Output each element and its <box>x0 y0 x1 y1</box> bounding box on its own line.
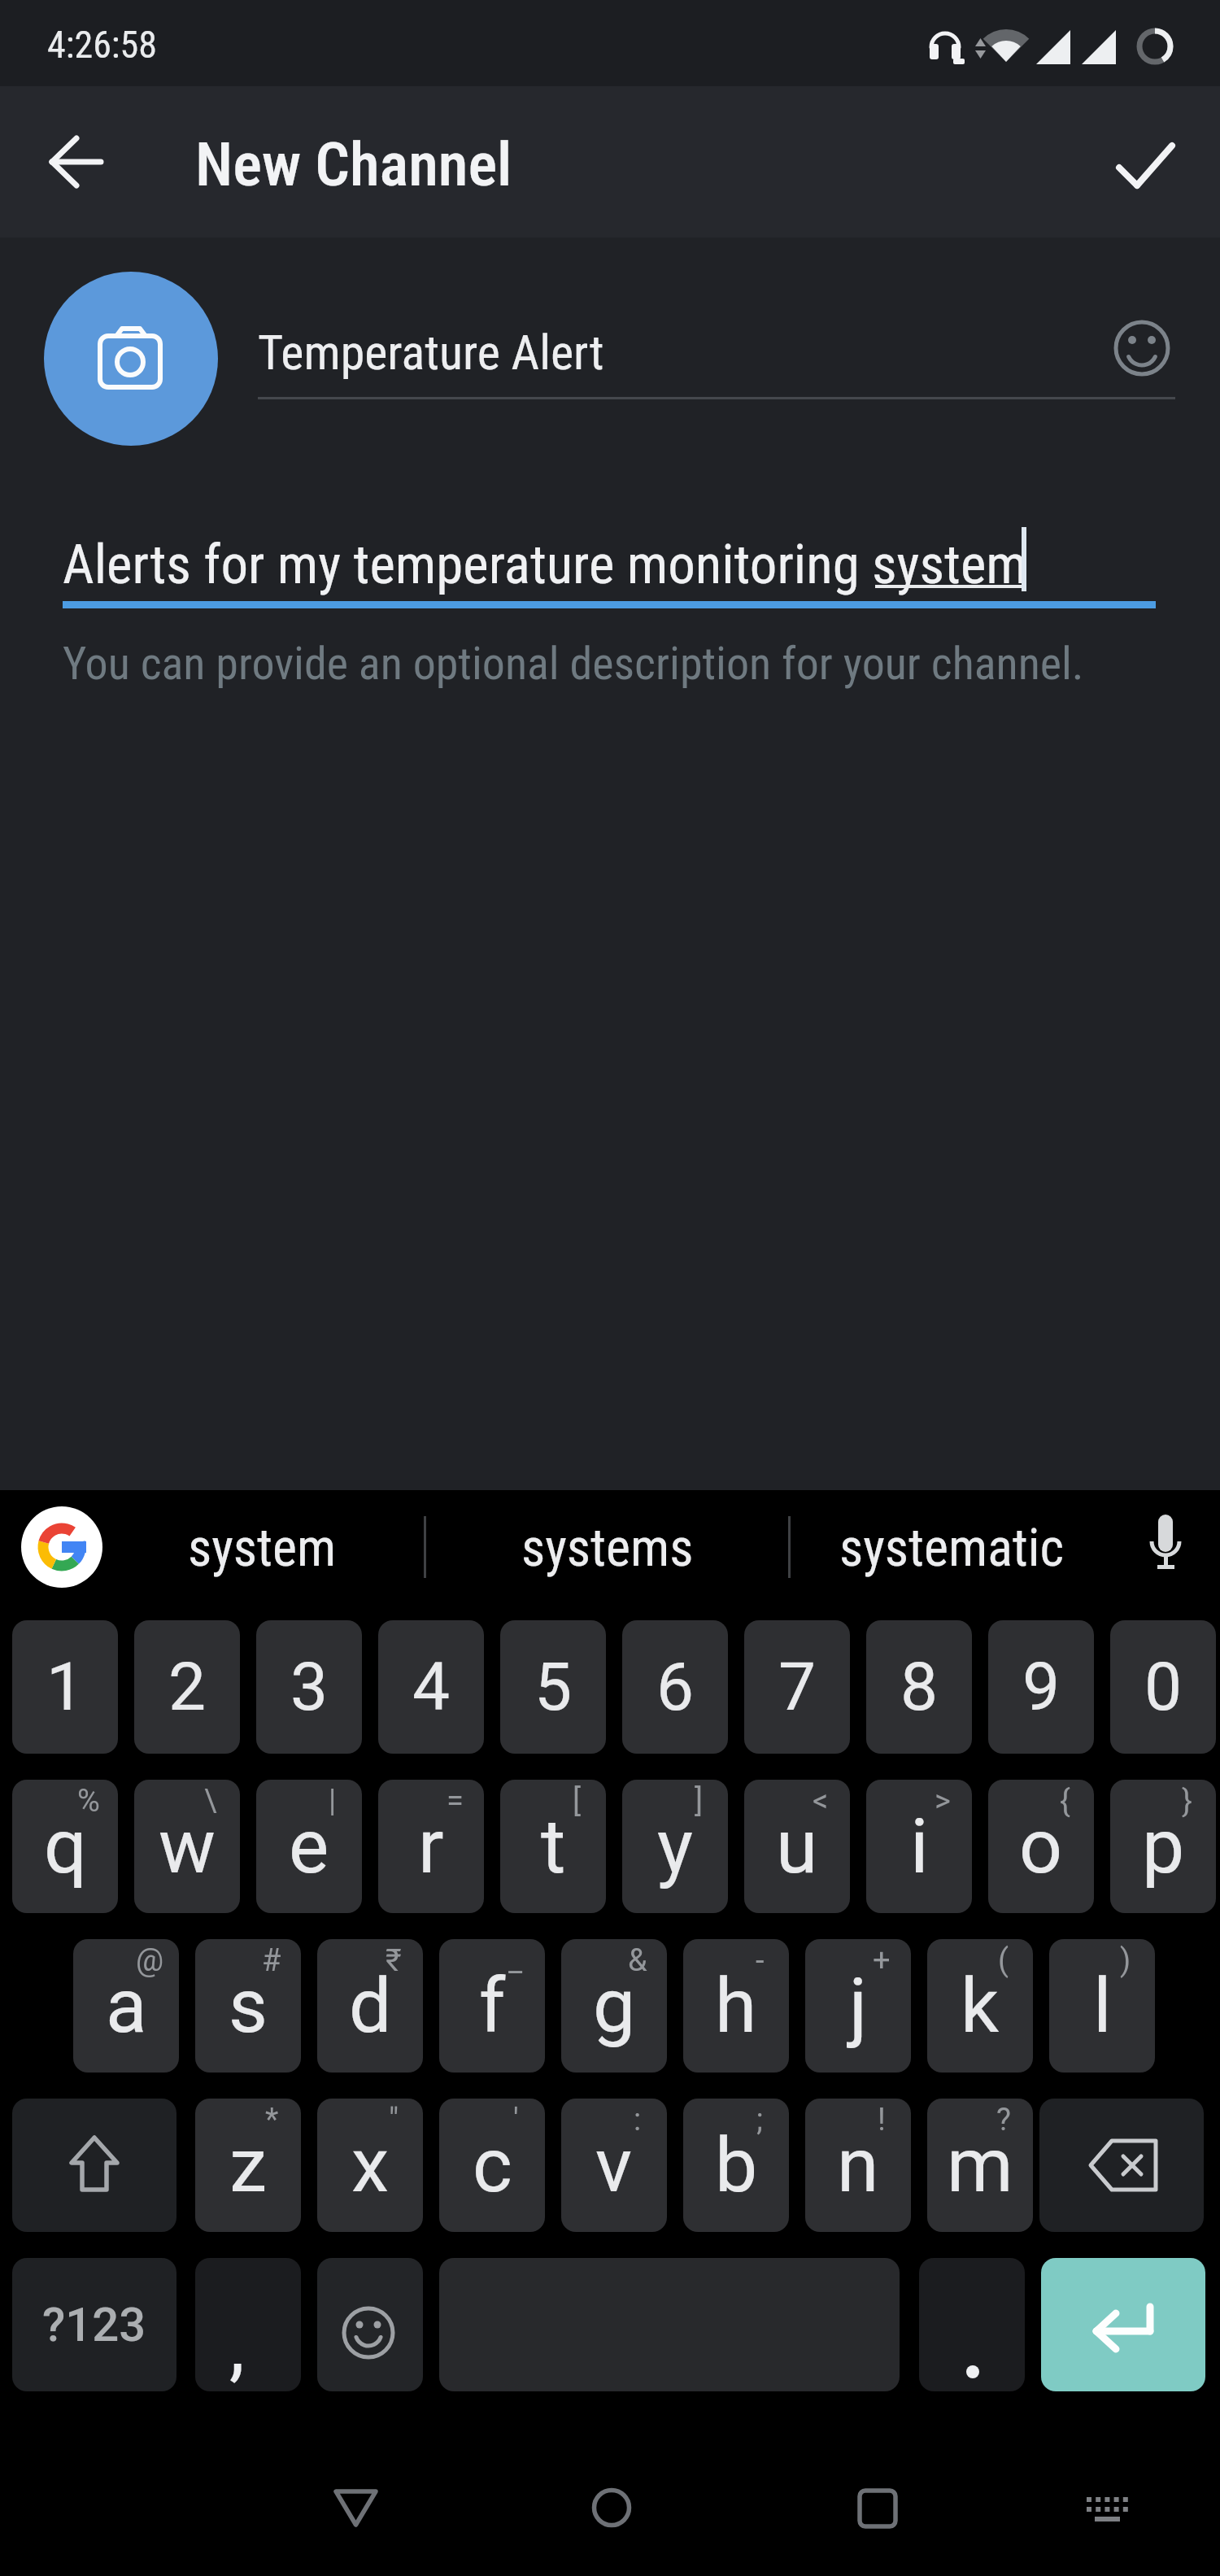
staticText: = <box>447 1783 464 1820</box>
staticText: m <box>947 2121 1013 2210</box>
staticText: | <box>329 1783 337 1820</box>
staticText: @ <box>136 1942 164 1979</box>
staticText: + <box>873 1942 891 1979</box>
staticText: 6 <box>656 1648 695 1726</box>
staticText: z <box>229 2121 268 2210</box>
staticText: _ <box>508 1942 523 1979</box>
staticText: , <box>229 2300 245 2391</box>
staticText: 2 <box>168 1648 207 1726</box>
staticText: Temperature Alert <box>258 324 604 381</box>
staticText: { <box>1060 1783 1070 1820</box>
staticText: [ <box>573 1783 582 1820</box>
staticText: You can provide an optional description … <box>63 637 1084 691</box>
staticText: ?123 <box>42 2297 146 2352</box>
staticText: j <box>849 1962 868 2051</box>
staticText: v <box>595 2121 633 2210</box>
staticText: b <box>715 2121 758 2210</box>
staticText: k <box>961 1962 1000 2051</box>
staticText: Alerts for my temperature monitoring sys… <box>63 533 1027 597</box>
staticText: ( <box>998 1942 1009 1979</box>
staticText: 5 <box>534 1648 573 1726</box>
staticText: \ <box>204 1783 217 1820</box>
staticText: a <box>106 1962 147 2051</box>
staticText: u <box>776 1802 818 1891</box>
staticText: - <box>756 1942 765 1979</box>
staticText: 4:26:58 <box>47 23 158 67</box>
staticText: & <box>628 1942 647 1979</box>
staticText: 9 <box>1022 1648 1061 1726</box>
staticText: x <box>351 2121 390 2210</box>
staticText: f <box>479 1962 506 2051</box>
staticText: i <box>910 1802 929 1891</box>
staticText: y <box>657 1802 694 1891</box>
staticText: e <box>289 1802 329 1891</box>
staticText: s <box>229 1962 268 2051</box>
staticText: n <box>837 2121 879 2210</box>
staticText: d <box>349 1962 392 2051</box>
staticText: 8 <box>900 1648 939 1726</box>
staticText: New Channel <box>195 129 512 200</box>
staticText: } <box>1182 1783 1192 1820</box>
staticText: h <box>715 1962 757 2051</box>
staticText: ; <box>756 2102 764 2138</box>
staticText: r <box>418 1802 444 1891</box>
staticText: ₹ <box>386 1942 402 1979</box>
staticText: w <box>159 1802 216 1891</box>
staticText: l <box>1093 1962 1112 2051</box>
staticText: systems <box>521 1518 694 1579</box>
staticText: 7 <box>778 1648 817 1726</box>
staticText: * <box>265 2102 279 2138</box>
staticText: p <box>1142 1802 1185 1891</box>
staticText: system <box>188 1518 337 1579</box>
staticText: ] <box>695 1783 704 1820</box>
staticText: t <box>541 1802 566 1891</box>
staticText: q <box>44 1802 87 1891</box>
staticText: ' <box>513 2102 519 2138</box>
staticText: < <box>813 1783 829 1820</box>
staticText: 0 <box>1144 1648 1183 1726</box>
staticText: 3 <box>290 1648 329 1726</box>
staticText: # <box>262 1942 281 1979</box>
staticText: : <box>634 2102 642 2138</box>
staticText: ! <box>878 2102 886 2138</box>
staticText: % <box>77 1783 100 1820</box>
staticText: ) <box>1120 1942 1131 1979</box>
staticText: o <box>1019 1802 1063 1891</box>
staticText: 4 <box>412 1648 451 1726</box>
staticText: systematic <box>839 1518 1064 1579</box>
staticText: > <box>935 1783 951 1820</box>
staticText: 1 <box>46 1648 85 1726</box>
staticText: " <box>389 2102 399 2138</box>
staticText: c <box>473 2121 512 2210</box>
staticText: g <box>593 1962 636 2051</box>
staticText: ? <box>996 2102 1011 2138</box>
